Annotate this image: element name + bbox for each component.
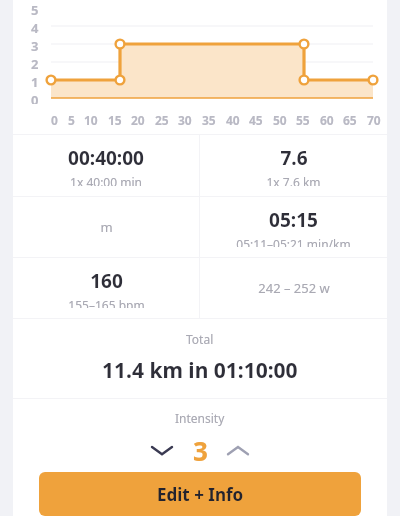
button[interactable]: Decrease intensity bbox=[140, 428, 184, 472]
staticText: 0 bbox=[31, 91, 39, 104]
staticText: 3 bbox=[193, 433, 208, 468]
staticText: 2 bbox=[31, 55, 39, 73]
staticText: 1x 40:00 min bbox=[70, 174, 142, 186]
staticText: 242 – 252 w bbox=[258, 279, 330, 297]
staticText: 3 bbox=[31, 37, 39, 55]
staticText: Intensity bbox=[175, 410, 225, 426]
staticText: 00:40:00 bbox=[68, 145, 144, 171]
staticText: 11.4 km in 01:10:00 bbox=[102, 356, 298, 385]
staticText: 5 bbox=[31, 1, 39, 19]
staticText: 55 bbox=[296, 112, 310, 128]
staticText: 05:15 bbox=[269, 207, 318, 233]
staticText: 5 bbox=[68, 112, 75, 128]
staticText: 0 bbox=[51, 112, 58, 128]
staticText: 4 bbox=[31, 19, 39, 37]
staticText: 10 bbox=[84, 112, 98, 128]
staticText: 35 bbox=[202, 112, 216, 128]
button[interactable]: Edit + Info bbox=[39, 472, 361, 516]
staticText: 15 bbox=[108, 112, 122, 128]
staticText: Edit + Info bbox=[157, 483, 244, 506]
staticText: 25 bbox=[155, 112, 169, 128]
staticText: 160 bbox=[90, 268, 123, 294]
staticText: 155–165 bpm bbox=[68, 297, 145, 308]
staticText: 40 bbox=[226, 112, 240, 128]
staticText: 20 bbox=[131, 112, 145, 128]
staticText: 70 bbox=[367, 112, 381, 128]
staticText: 1x 7.6 km bbox=[266, 174, 321, 186]
staticText: 30 bbox=[178, 112, 192, 128]
staticText: Total bbox=[186, 331, 214, 347]
staticText: 60 bbox=[320, 112, 334, 128]
staticText: 05:11–05:21 min/km bbox=[236, 236, 351, 247]
staticText: 65 bbox=[343, 112, 357, 128]
staticText: m bbox=[100, 218, 113, 236]
staticText: 7.6 bbox=[280, 145, 308, 171]
button[interactable]: Increase intensity bbox=[216, 428, 260, 472]
staticText: 50 bbox=[273, 112, 287, 128]
staticText: 1 bbox=[31, 73, 39, 91]
staticText: 45 bbox=[249, 112, 263, 128]
